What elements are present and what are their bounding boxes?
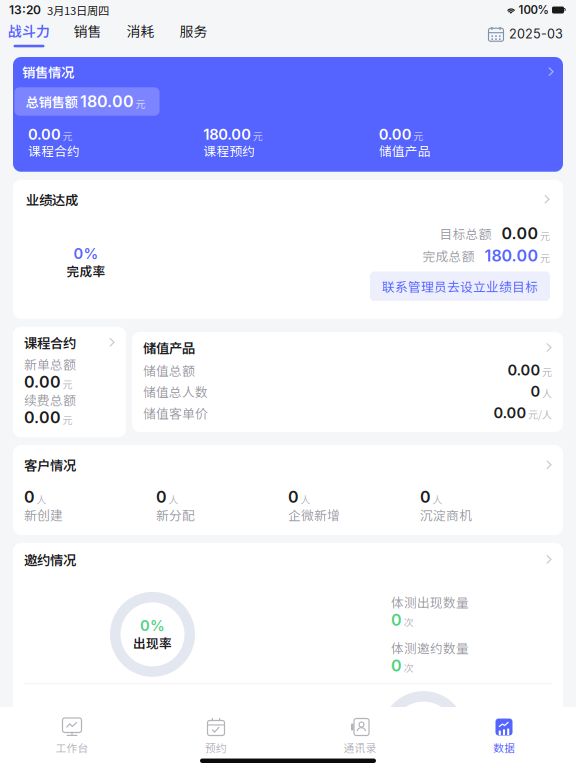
staticText: 储值产品 — [143, 338, 195, 357]
staticText: 人 — [300, 492, 310, 506]
staticText: 0.00 — [379, 126, 412, 143]
staticText: 目标总额 — [439, 224, 491, 243]
staticText: 100% — [518, 3, 548, 17]
staticText: 销售情况 — [22, 62, 74, 81]
staticText: 客户情况 — [24, 455, 76, 474]
staticText: 次 — [403, 660, 413, 675]
button[interactable]: 战斗力 — [8, 21, 50, 47]
staticText: 人 — [36, 492, 46, 506]
staticText: 消耗 — [126, 21, 154, 41]
staticText: 0 — [288, 487, 299, 507]
staticText: 总销售额 — [25, 92, 77, 111]
staticText: 预约 — [205, 740, 227, 755]
staticText: 邀约情况 — [24, 550, 76, 569]
staticText: 人 — [168, 492, 178, 506]
staticText: 180.00 — [80, 92, 134, 111]
staticText: 元 — [135, 96, 145, 111]
button[interactable]: 消耗 — [125, 21, 156, 47]
button[interactable]: 课程合约 — [13, 327, 126, 437]
button[interactable]: 储值产品 — [132, 332, 563, 432]
staticText: 0 — [156, 487, 167, 507]
button[interactable]: 服务 — [178, 21, 209, 47]
staticText: 元 — [253, 128, 263, 143]
staticText: 元 — [540, 228, 550, 243]
staticText: 0 — [530, 383, 540, 400]
staticText: 人 — [542, 385, 552, 400]
button[interactable]: 通讯录 — [288, 718, 432, 755]
staticText: 0.00 — [24, 408, 61, 427]
staticText: 储值总人数 — [143, 382, 208, 401]
staticText: 元 — [62, 376, 72, 391]
staticText: 完成总额 — [422, 247, 474, 265]
staticText: 通讯录 — [343, 740, 376, 755]
staticText: 完成率 — [66, 261, 105, 280]
staticText: 储值总额 — [143, 361, 195, 379]
staticText: 0.00 — [507, 361, 540, 379]
button[interactable]: 客户情况 — [13, 445, 563, 535]
staticText: 储值客单价 — [143, 404, 208, 422]
staticText: 课程合约 — [28, 141, 80, 160]
staticText: 0.00 — [28, 126, 61, 143]
staticText: 0 — [24, 487, 35, 507]
button[interactable]: 业绩达成 — [13, 180, 563, 319]
staticText: 销售 — [73, 21, 101, 41]
staticText: 人 — [432, 492, 442, 506]
staticText: 新创建 — [24, 506, 63, 524]
staticText: 0 — [420, 487, 431, 507]
staticText: 新分配 — [156, 506, 195, 524]
staticText: 180.00 — [203, 126, 251, 143]
staticText: 0.00 — [501, 224, 538, 243]
staticText: 180.00 — [484, 246, 538, 265]
staticText: 出现率 — [133, 634, 172, 652]
staticText: 0.00 — [493, 404, 526, 422]
staticText: 沉淀商机 — [420, 506, 472, 524]
staticText: 次 — [403, 615, 413, 629]
staticText: 体测出现数量 — [391, 593, 469, 611]
button[interactable]: 联系管理员去设立业绩目标 — [370, 271, 550, 301]
button[interactable]: 数据 — [432, 718, 576, 755]
staticText: 企微新增 — [288, 506, 340, 524]
staticText: 3月13日周四 — [47, 2, 109, 18]
staticText: 战斗力 — [8, 21, 50, 41]
staticText: 课程合约 — [24, 333, 76, 352]
button[interactable]: 销售情况 — [13, 57, 563, 172]
staticText: 0 — [391, 656, 402, 675]
button[interactable]: 2025-03 — [488, 26, 563, 42]
staticText: 元 — [413, 128, 423, 143]
staticText: 业绩达成 — [26, 190, 78, 209]
staticText: 元 — [62, 412, 72, 427]
staticText: 数据 — [493, 740, 515, 755]
staticText: 元/人 — [528, 407, 552, 421]
staticText: 工作台 — [55, 740, 88, 755]
button[interactable]: 销售 — [72, 21, 103, 47]
staticText: 服务 — [179, 21, 207, 41]
staticText: 2025-03 — [509, 26, 563, 42]
staticText: 0 — [391, 610, 402, 630]
button[interactable]: 工作台 — [0, 718, 144, 755]
staticText: 课程预约 — [203, 141, 255, 160]
staticText: 储值产品 — [379, 141, 431, 160]
staticText: 联系管理员去设立业绩目标 — [382, 277, 538, 295]
staticText: 0% — [73, 245, 98, 262]
staticText: 元 — [62, 128, 72, 143]
button[interactable]: 预约 — [144, 718, 288, 755]
staticText: 续费总额 — [24, 390, 76, 409]
staticText: 0.00 — [24, 372, 61, 392]
staticText: 0% — [140, 617, 165, 634]
staticText: 元 — [540, 250, 550, 265]
staticText: 新单总额 — [24, 355, 76, 373]
staticText: 体测邀约数量 — [391, 639, 469, 657]
staticText: 元 — [542, 364, 552, 379]
staticText: 13:20 — [9, 3, 41, 17]
